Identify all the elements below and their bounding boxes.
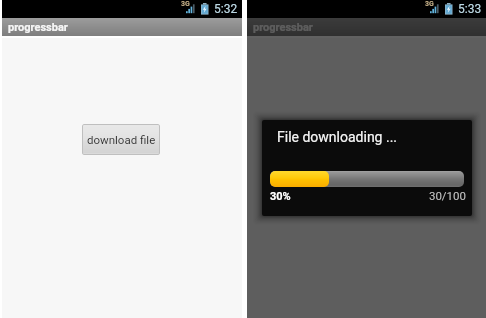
button[interactable]: download file [82,124,160,155]
other: Battery charging [445,2,455,16]
other: Signal strength [430,3,440,15]
staticText: progressbar [8,21,68,34]
staticText: 3G [181,0,190,8]
staticText: 30/100 [272,189,466,202]
other: Battery charging [201,2,211,16]
staticText: progressbar [253,21,313,34]
staticText: File downloading ... [277,129,398,145]
staticText: 5:33 [458,2,482,16]
staticText: 3G [425,0,434,8]
staticText: download file [87,133,156,146]
staticText: 5:32 [214,2,238,16]
staticText: 30% [270,190,291,203]
other: Signal strength [186,3,196,15]
